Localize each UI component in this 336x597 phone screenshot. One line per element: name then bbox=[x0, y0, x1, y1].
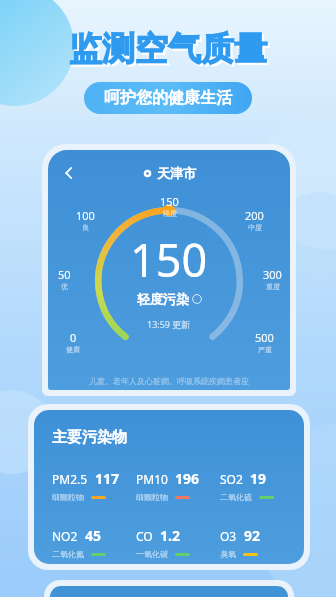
staticText: 117 bbox=[95, 469, 120, 488]
staticText: 45 bbox=[85, 526, 102, 545]
staticText: 监测空气质量 bbox=[71, 30, 269, 72]
staticText: 50 bbox=[58, 267, 71, 282]
staticText: SO2 bbox=[220, 471, 243, 487]
staticText: 严重 bbox=[258, 345, 272, 354]
staticText: 主要污染物 bbox=[52, 428, 127, 447]
staticText: 天津市 bbox=[157, 165, 196, 181]
button[interactable]: Back bbox=[56, 160, 82, 186]
staticText: CO bbox=[136, 528, 153, 544]
staticText: PM10 bbox=[136, 471, 168, 487]
staticText: 500 bbox=[255, 330, 274, 345]
staticText: 13:59 更新 bbox=[147, 318, 191, 330]
button[interactable]: 呵护您的健康生活 bbox=[84, 82, 252, 114]
staticText: 轻度 bbox=[163, 209, 177, 218]
staticText: 轻度污染 bbox=[137, 291, 189, 307]
staticText: 300 bbox=[263, 267, 282, 282]
staticText: 二氧化氮 bbox=[52, 549, 84, 559]
staticText: 150 bbox=[130, 229, 208, 290]
staticText: 中度 bbox=[248, 223, 262, 232]
staticText: 一氧化碳 bbox=[136, 549, 168, 559]
staticText: 196 bbox=[175, 469, 200, 488]
staticText: 监测空气质量 bbox=[69, 28, 267, 70]
staticText: 细颗粒物 bbox=[136, 492, 168, 502]
staticText: 良 bbox=[82, 223, 89, 232]
staticText: 呵护您的健康生活 bbox=[104, 88, 232, 108]
staticText: 二氧化硫 bbox=[220, 492, 252, 502]
staticText: 150 bbox=[160, 194, 179, 209]
staticText: 92 bbox=[244, 526, 261, 545]
staticText: PM2.5 bbox=[52, 471, 88, 487]
button[interactable]: 主要污染物 bbox=[34, 410, 304, 564]
staticText: 臭氧 bbox=[220, 549, 236, 559]
staticText: 100 bbox=[76, 208, 95, 223]
staticText: NO2 bbox=[52, 528, 78, 544]
staticText: 1.2 bbox=[160, 526, 180, 545]
staticText: 儿童、老年人及心脏病、呼吸系统疾病患者应 bbox=[89, 376, 249, 385]
staticText: 0 bbox=[70, 330, 77, 345]
staticText: 健康 bbox=[66, 345, 80, 354]
staticText: 重度 bbox=[266, 282, 280, 291]
staticText: 细颗粒物 bbox=[52, 492, 84, 502]
staticText: 19 bbox=[250, 469, 267, 488]
staticText: 200 bbox=[245, 208, 264, 223]
staticText: O3 bbox=[220, 528, 237, 544]
staticText: 优 bbox=[61, 282, 68, 291]
